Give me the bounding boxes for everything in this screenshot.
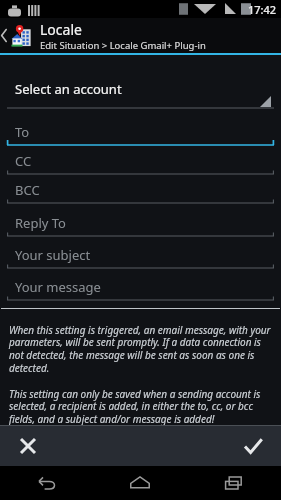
staticText: Reply To [15, 214, 66, 232]
button[interactable]: Done [225, 426, 281, 466]
button[interactable]: BCC [7, 177, 274, 206]
button[interactable]: Reply To [7, 210, 274, 239]
staticText: Your message [15, 278, 101, 296]
button[interactable]: Recents [187, 466, 281, 500]
staticText: 17:42 [248, 2, 277, 17]
staticText: When this setting is triggered, an email… [9, 323, 272, 375]
staticText: CC [15, 152, 32, 170]
button[interactable]: Home [93, 466, 187, 500]
staticText: Edit Situation > Locale Gmail+ Plug-in [40, 39, 206, 52]
staticText: Select an account [15, 80, 122, 98]
button[interactable]: Your message [7, 274, 274, 303]
button[interactable]: To [7, 119, 274, 148]
staticText: BCC [15, 181, 40, 199]
staticText: Your subject [15, 246, 91, 264]
button[interactable]: Your subject [7, 242, 274, 271]
button[interactable]: Back [0, 466, 93, 500]
staticText: Locale [40, 20, 82, 39]
staticText: To [15, 123, 30, 141]
staticText: This setting can only be saved when a se… [9, 387, 272, 425]
button[interactable]: Cancel [0, 426, 56, 466]
button[interactable]: Select an account [7, 77, 274, 111]
button[interactable]: Up [0, 18, 281, 53]
button[interactable]: CC [7, 148, 274, 177]
